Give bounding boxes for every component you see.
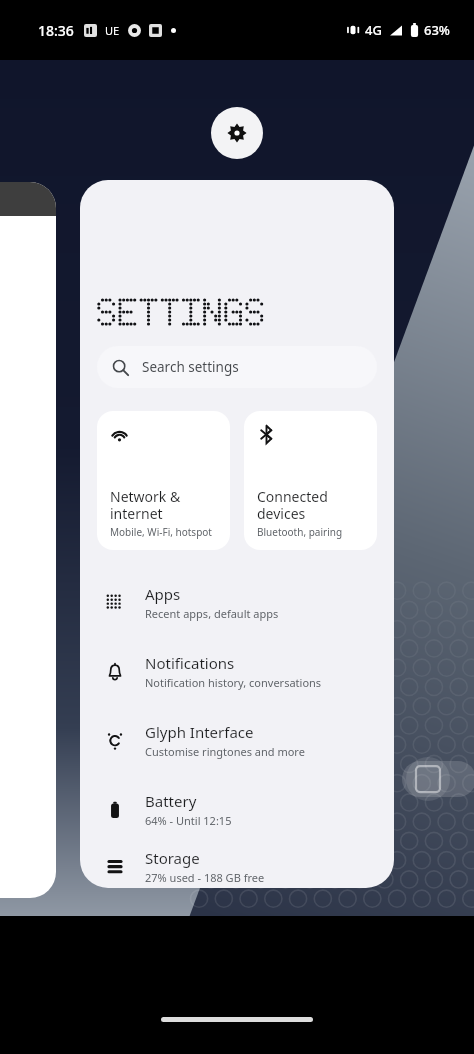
staticText: Storage [145,848,200,868]
button[interactable]: Apps [80,568,394,637]
staticText: 63% [424,21,450,39]
staticText: Search settings [142,358,239,376]
staticText: Notifications [145,653,235,673]
button[interactable]: Notifications [80,637,394,706]
staticText: Customise ringtones and more [145,744,305,759]
button[interactable]: Search settings [97,346,377,388]
staticText: Bluetooth, pairing [257,525,343,539]
staticText: 4G [365,21,382,39]
staticText: Network & internet [110,487,181,523]
staticText: Apps [145,584,181,604]
staticText: 64% - Until 12:15 [145,813,232,828]
button[interactable]: Network & internet [97,411,230,550]
button[interactable] [0,182,56,898]
button[interactable]: Glyph Interface [80,706,394,775]
button[interactable]: Connected devices [244,411,377,550]
staticText: UE [105,23,120,38]
staticText: Mobile, Wi-Fi, hotspot [110,525,212,539]
button[interactable]: Settings app icon [211,107,263,159]
staticText: Notification history, conversations [145,675,322,690]
staticText: Battery [145,791,197,811]
staticText: 18:36 [38,21,74,40]
staticText: Glyph Interface [145,722,254,742]
staticText: Connected devices [257,487,328,523]
staticText: 27% used - 188 GB free [145,870,265,885]
button[interactable]: Storage [80,844,394,888]
staticText: Recent apps, default apps [145,606,279,621]
button[interactable]: Battery [80,775,394,844]
